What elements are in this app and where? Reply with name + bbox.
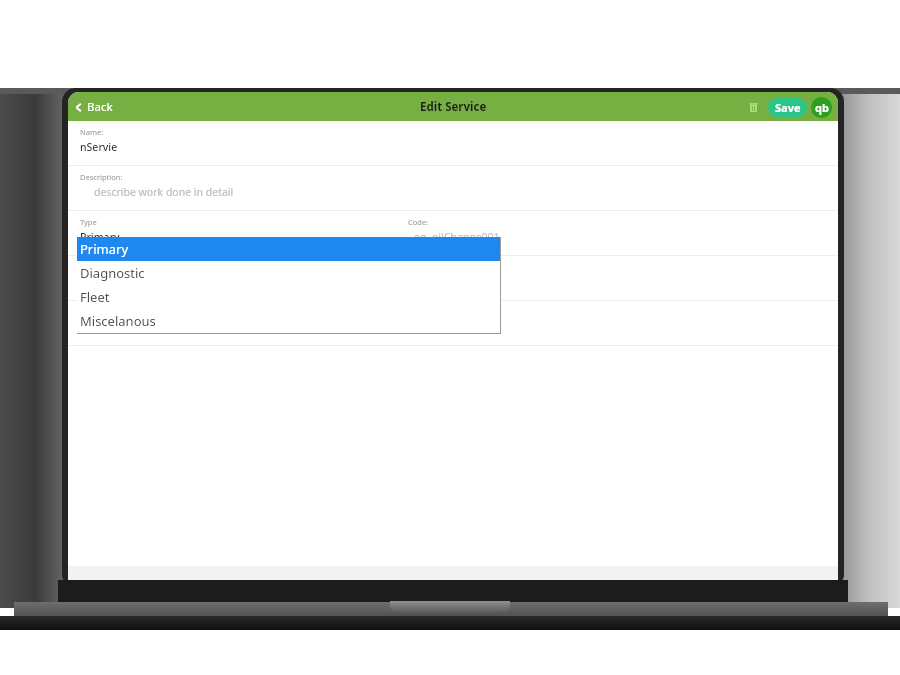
staticText: Fleet bbox=[80, 288, 110, 306]
button[interactable]: Name: bbox=[68, 121, 838, 166]
button[interactable]: Diagnostic bbox=[77, 261, 500, 285]
button[interactable]: QuickBooks bbox=[811, 97, 832, 118]
button[interactable]: Back bbox=[68, 96, 121, 118]
staticText: nServie bbox=[80, 140, 118, 154]
button[interactable]: Miscelanous bbox=[77, 309, 500, 333]
staticText: Edit Service bbox=[420, 99, 487, 115]
button[interactable]: Save bbox=[768, 98, 807, 117]
button[interactable]: Description: bbox=[68, 166, 838, 211]
staticText: qb bbox=[815, 100, 829, 115]
button[interactable]: Delete bbox=[742, 96, 764, 118]
staticText: Miscelanous bbox=[80, 312, 156, 330]
button[interactable]: Type bbox=[68, 211, 838, 256]
staticText: Save bbox=[775, 100, 801, 115]
staticText: describe work done in detail bbox=[94, 185, 234, 199]
staticText: Back bbox=[87, 99, 113, 115]
button[interactable] bbox=[68, 301, 838, 346]
staticText: Code: bbox=[408, 217, 429, 227]
staticText: eg. oilChange001 bbox=[414, 230, 500, 244]
button[interactable]: Fleet bbox=[77, 285, 500, 309]
staticText: Primary bbox=[80, 230, 120, 244]
staticText: Diagnostic bbox=[80, 264, 145, 282]
staticText: Primary bbox=[80, 240, 129, 258]
button[interactable] bbox=[68, 256, 838, 301]
staticText: Type bbox=[80, 217, 97, 227]
staticText: Name: bbox=[80, 127, 104, 137]
staticText: Description: bbox=[80, 172, 123, 182]
button[interactable]: Primary bbox=[77, 237, 500, 261]
